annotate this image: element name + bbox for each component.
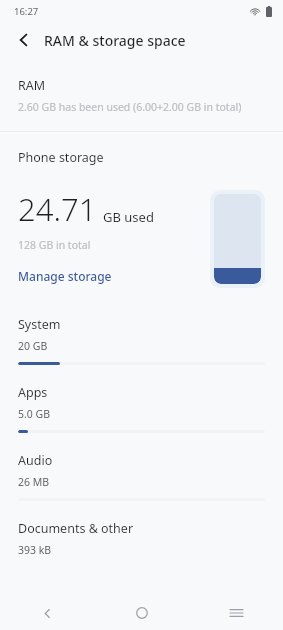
staticText: 24.71 (18, 188, 97, 230)
staticText: RAM & storage space (44, 31, 186, 50)
staticText: 5.0 GB (18, 407, 51, 421)
staticText: 128 GB in total (18, 238, 91, 252)
button[interactable]: Back (0, 596, 95, 630)
staticText: Documents & other (18, 520, 134, 537)
button[interactable]: Apps (0, 384, 283, 452)
staticText: Phone storage (18, 149, 104, 166)
button[interactable]: System (0, 316, 283, 384)
button[interactable]: Back (10, 26, 38, 54)
button[interactable]: Recent apps (189, 596, 283, 630)
staticText: 393 kB (18, 543, 52, 557)
button[interactable]: Manage storage (18, 268, 112, 284)
staticText: Apps (18, 384, 48, 401)
staticText: 26 MB (18, 475, 50, 489)
staticText: System (18, 316, 61, 333)
button[interactable]: Audio (0, 452, 283, 520)
staticText: Audio (18, 452, 53, 469)
staticText: GB used (103, 208, 154, 226)
button[interactable]: Home (95, 596, 189, 630)
staticText: 2.60 GB has been used (6.00+2.00 GB in t… (18, 100, 242, 114)
staticText: 16:27 (14, 5, 39, 18)
staticText: Manage storage (18, 268, 112, 284)
staticText: RAM (18, 77, 46, 94)
staticText: 20 GB (18, 339, 48, 353)
button[interactable]: Documents & other (0, 520, 283, 585)
